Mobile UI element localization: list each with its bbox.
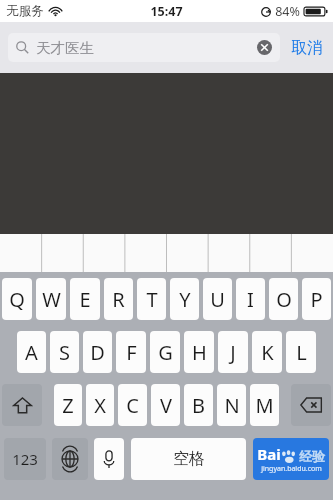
button[interactable]: Z [54, 384, 82, 426]
staticText: O [276, 286, 292, 313]
staticText: C [126, 392, 139, 419]
button[interactable]: Shift [2, 384, 42, 426]
staticText: W [42, 286, 61, 313]
button[interactable]: O [269, 278, 298, 320]
button[interactable]: M [250, 384, 279, 426]
button[interactable]: 天才医生 [8, 33, 280, 62]
staticText: E [79, 286, 91, 313]
button[interactable]: U [203, 278, 232, 320]
button[interactable]: Switch keyboard language [52, 438, 88, 480]
staticText: H [192, 339, 207, 366]
button[interactable]: I [236, 278, 265, 320]
staticText: Y [179, 286, 191, 313]
staticText: 84% [275, 3, 300, 20]
staticText: Z [62, 392, 74, 419]
button[interactable]: L [286, 331, 316, 373]
button[interactable]: N [217, 384, 246, 426]
button[interactable]: S [50, 331, 79, 373]
button[interactable]: V [151, 384, 180, 426]
staticText: S [59, 339, 70, 366]
button[interactable]: P [302, 278, 331, 320]
button[interactable]: G [150, 331, 180, 373]
button[interactable]: Clear text [257, 40, 272, 55]
staticText: K [261, 339, 274, 366]
staticText: jingyan.baidu.com [261, 464, 322, 474]
staticText: I [247, 286, 254, 313]
staticText: M [255, 392, 274, 419]
button[interactable]: K [252, 331, 282, 373]
button[interactable]: E [70, 278, 100, 320]
staticText: X [94, 392, 106, 419]
button[interactable]: F [116, 331, 146, 373]
staticText: Bai [257, 444, 281, 464]
button[interactable]: C [118, 384, 147, 426]
staticText: J [230, 339, 236, 366]
button[interactable]: 取消 [289, 34, 325, 62]
button[interactable]: X [86, 384, 114, 426]
staticText: 经验 [299, 448, 325, 464]
staticText: T [146, 286, 158, 313]
button[interactable]: J [218, 331, 248, 373]
button[interactable]: 123 [4, 438, 46, 480]
staticText: 15:47 [150, 3, 183, 20]
button[interactable]: H [184, 331, 214, 373]
button[interactable]: Bai [253, 438, 329, 480]
staticText: 无服务 [6, 3, 44, 19]
button[interactable]: Backspace [291, 384, 331, 426]
staticText: B [192, 392, 205, 419]
staticText: P [310, 286, 323, 313]
button[interactable]: D [83, 331, 112, 373]
staticText: L [296, 339, 307, 366]
staticText: R [112, 286, 125, 313]
staticText: 天才医生 [36, 39, 94, 57]
staticText: G [158, 339, 173, 366]
staticText: 取消 [291, 38, 323, 58]
button[interactable]: Q [2, 278, 32, 320]
staticText: D [90, 339, 105, 366]
staticText: V [160, 392, 172, 419]
button[interactable]: R [104, 278, 133, 320]
button[interactable]: W [36, 278, 66, 320]
button[interactable]: A [17, 331, 46, 373]
button[interactable]: Voice input [94, 438, 124, 480]
staticText: A [25, 339, 38, 366]
button[interactable]: B [184, 384, 213, 426]
staticText: F [126, 339, 137, 366]
staticText: 空格 [173, 449, 205, 469]
staticText: Q [9, 286, 25, 313]
staticText: 123 [12, 449, 38, 469]
staticText: U [210, 286, 225, 313]
staticText: N [224, 392, 240, 419]
button[interactable]: T [137, 278, 166, 320]
button[interactable]: Y [170, 278, 199, 320]
button[interactable]: 空格 [131, 438, 246, 480]
